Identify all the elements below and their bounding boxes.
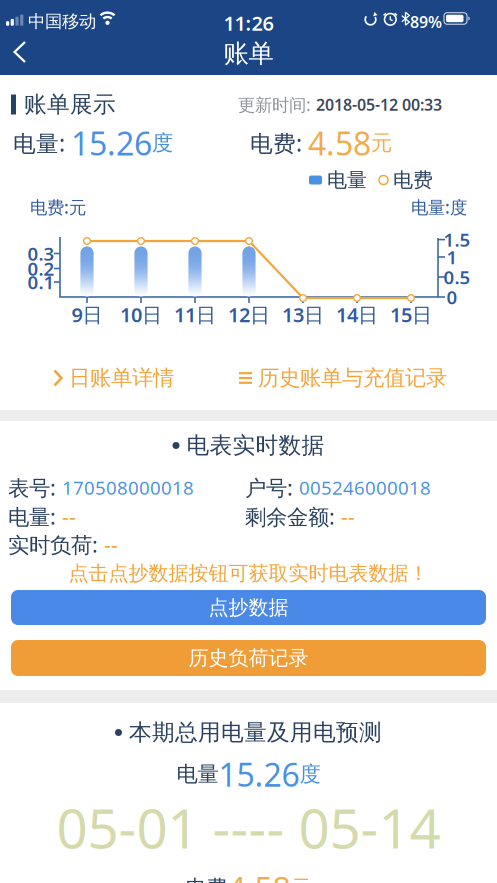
staticText: 历史账单与充值记录 [258,365,447,391]
staticText: 2018-05-12 00:33 [316,94,442,115]
staticText: 10日 [120,301,162,328]
staticText: 4.58 [308,122,371,164]
staticText: 电费:元 [30,195,86,218]
staticText: 账单展示 [24,91,116,118]
staticText: 15.26 [71,122,152,164]
button[interactable]: 日账单详情 [53,365,174,391]
staticText: -- [341,502,355,531]
staticText: -- [104,530,118,559]
staticText: 89% [410,11,442,32]
staticText: 005246000018 [299,475,431,500]
staticText: 度 [152,130,173,156]
button[interactable]: 点抄数据 [11,590,486,625]
staticText: 更新时间: [238,93,316,116]
staticText: 13日 [282,301,324,328]
staticText: 表号: [8,473,62,502]
staticText: 170508000018 [62,475,194,500]
staticText: 中国移动 [28,11,96,32]
staticText: 0 [446,285,457,309]
staticText: 0.5 [443,265,470,289]
button[interactable]: Back [12,40,40,65]
staticText: 4.58 [227,867,290,883]
staticText: 1.5 [443,227,470,252]
button[interactable]: 历史负荷记录 [11,640,486,676]
staticText: 电量: [13,128,71,158]
staticText: 11:26 [223,10,273,36]
staticText: 11日 [174,301,216,328]
staticText: 元 [290,875,311,883]
staticText: 点抄数据 [208,595,288,620]
button[interactable]: 历史账单与充值记录 [239,365,447,391]
staticText: 电量 [176,761,218,787]
staticText: 电费 [185,875,227,883]
staticText: 点击点抄数据按钮可获取实时电表数据！ [68,561,428,586]
staticText: 本期总用电量及用电预测 [129,719,382,746]
staticText: 度 [299,761,320,787]
staticText: 0.2 [27,256,54,281]
staticText: 1 [446,245,457,269]
staticText: 账单 [223,38,273,69]
staticText: 0.1 [27,270,54,294]
staticText: 电费 [393,168,433,192]
staticText: 12日 [228,301,270,328]
staticText: 电表实时数据 [186,432,324,459]
staticText: 15.26 [218,753,299,795]
staticText: 9日 [71,301,102,328]
staticText: 14日 [336,301,378,328]
staticText: 元 [371,130,392,156]
staticText: 15日 [390,301,432,328]
staticText: 历史负荷记录 [188,646,308,670]
staticText: 电量 [327,168,367,192]
staticText: 剩余金额: [245,502,341,531]
staticText: 电量:度 [411,195,467,218]
staticText: 户号: [245,473,299,502]
staticText: 实时负荷: [8,530,104,559]
staticText: 05-01 ---- 05-14 [56,791,440,864]
staticText: 0.3 [27,241,54,266]
staticText: 电费: [250,128,308,158]
staticText: 日账单详情 [69,365,174,391]
staticText: -- [62,502,76,531]
staticText: 电量: [8,502,62,531]
